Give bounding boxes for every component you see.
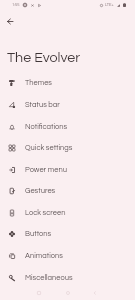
staticText: Status bar [25, 101, 60, 109]
button[interactable]: Back [2, 13, 18, 29]
staticText: Power menu [25, 166, 67, 174]
button[interactable]: Lock screen [0, 202, 135, 224]
staticText: Notifications [25, 123, 68, 131]
staticText: Gestures [25, 187, 56, 195]
staticText: Animations [25, 252, 63, 260]
staticText: Themes [25, 79, 52, 87]
staticText: Lock screen [25, 209, 66, 217]
button[interactable]: Gestures [0, 180, 135, 202]
staticText: Miscellaneous [25, 274, 73, 282]
button[interactable]: Animations [0, 245, 135, 267]
button[interactable]: Miscellaneous [0, 267, 135, 289]
staticText: Quick settings [25, 144, 73, 152]
button[interactable]: Quick settings [0, 137, 135, 159]
button[interactable]: Themes [0, 72, 135, 94]
staticText: The Evolver [7, 50, 81, 65]
button[interactable]: Power menu [0, 159, 135, 181]
button[interactable]: Status bar [0, 94, 135, 116]
button[interactable]: Buttons [0, 223, 135, 245]
staticText: Buttons [25, 230, 52, 238]
button[interactable]: Recents [32, 288, 46, 298]
staticText: LTE+ [105, 3, 114, 7]
staticText: 1:55 [12, 3, 20, 7]
button[interactable]: Home [61, 288, 75, 298]
button[interactable]: Notifications [0, 116, 135, 138]
